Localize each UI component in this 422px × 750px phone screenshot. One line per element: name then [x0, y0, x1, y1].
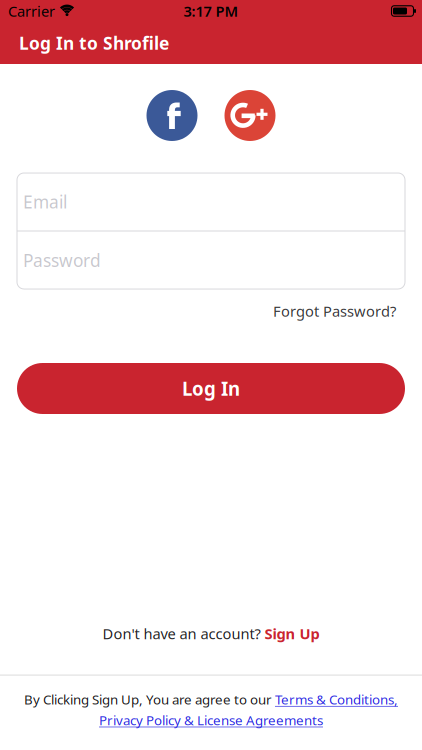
staticText: 3:17 PM [183, 1, 238, 21]
staticText: By Clicking Sign Up, You are agree to ou… [24, 691, 275, 708]
staticText: Email [23, 190, 67, 213]
button[interactable] [224, 90, 275, 141]
staticText: Forgot Password? [273, 301, 396, 321]
button[interactable]: Email [17, 173, 405, 230]
button[interactable]: Sign Up [264, 624, 319, 643]
button[interactable] [146, 90, 197, 141]
staticText: Log In [182, 376, 240, 401]
button[interactable]: Log In [17, 363, 405, 414]
staticText: Sign Up [264, 624, 319, 643]
staticText: Password [23, 249, 101, 272]
staticText: Terms & Conditions, [275, 691, 398, 708]
button[interactable]: Terms & Conditions, [275, 691, 398, 708]
button[interactable]: Forgot Password? [273, 301, 396, 321]
button[interactable]: Privacy Policy & License Agreements [99, 711, 323, 729]
staticText: Don't have an account? [102, 624, 264, 643]
staticText: Log In to Shrofile [19, 31, 169, 54]
button[interactable]: Password [17, 231, 405, 289]
staticText: Privacy Policy & License Agreements [99, 711, 323, 729]
staticText: Carrier [8, 1, 55, 21]
